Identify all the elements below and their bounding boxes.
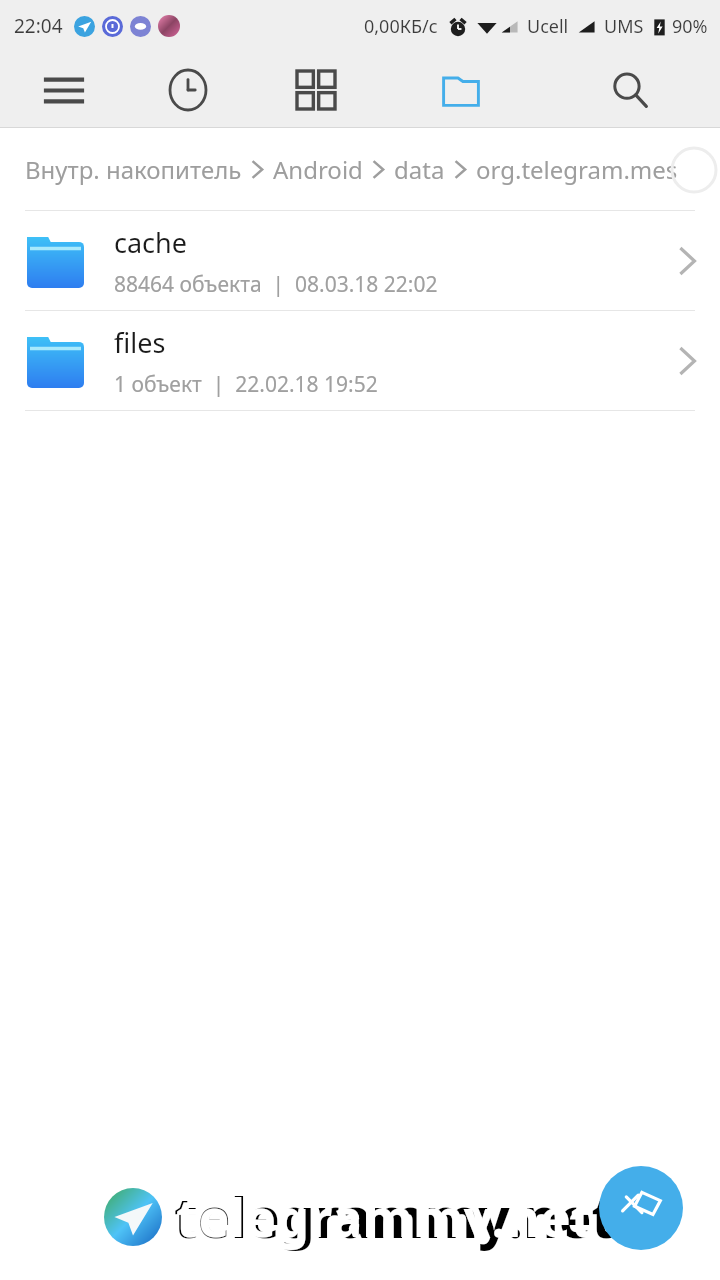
button[interactable]: Search: [540, 52, 720, 128]
staticText: Android: [273, 153, 363, 186]
button[interactable]: Внутр. накопитель: [25, 153, 242, 186]
staticText: 88464 объекта | 08.03.18 22:02: [114, 270, 438, 299]
staticText: UMS: [604, 14, 644, 39]
button[interactable]: Menu: [0, 52, 127, 128]
button[interactable]: Android: [273, 153, 363, 186]
staticText: 22:04: [14, 13, 63, 39]
staticText: telegrammy.net: [174, 1179, 616, 1254]
button[interactable]: files: [0, 311, 720, 411]
staticText: data: [394, 153, 445, 186]
button[interactable]: data: [394, 153, 445, 186]
staticText: org.telegram.mes: [476, 153, 678, 186]
staticText: 0,00КБ/с: [364, 14, 438, 39]
staticText: cache: [114, 224, 187, 261]
staticText: Внутр. накопитель: [25, 153, 242, 186]
staticText: Ucell: [527, 14, 569, 39]
staticText: files: [114, 324, 166, 361]
button[interactable]: org.telegram.mes: [476, 153, 678, 186]
staticText: 90%: [672, 14, 708, 39]
button[interactable]: Clean storage: [599, 1166, 683, 1250]
staticText: 1 объект | 22.02.18 19:52: [114, 370, 378, 399]
button[interactable]: cache: [0, 211, 720, 311]
button[interactable]: Folders: [382, 52, 540, 128]
button[interactable]: Categories: [249, 52, 382, 128]
staticText: telegrammy.net: [176, 1181, 594, 1252]
button[interactable]: Recent files: [127, 52, 249, 128]
